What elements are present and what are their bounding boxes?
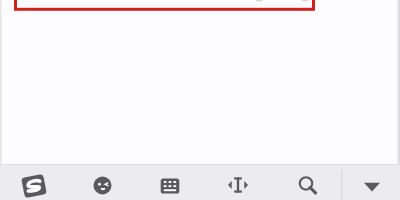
button[interactable]: Emoji bbox=[92, 175, 112, 195]
button[interactable]: Sogou input menu bbox=[21, 173, 47, 199]
button[interactable]: Move cursor bbox=[227, 174, 249, 196]
button[interactable]: Search bbox=[295, 173, 317, 195]
button[interactable]: Keyboard bbox=[159, 175, 181, 197]
button[interactable]: Hide keyboard bbox=[361, 175, 383, 197]
